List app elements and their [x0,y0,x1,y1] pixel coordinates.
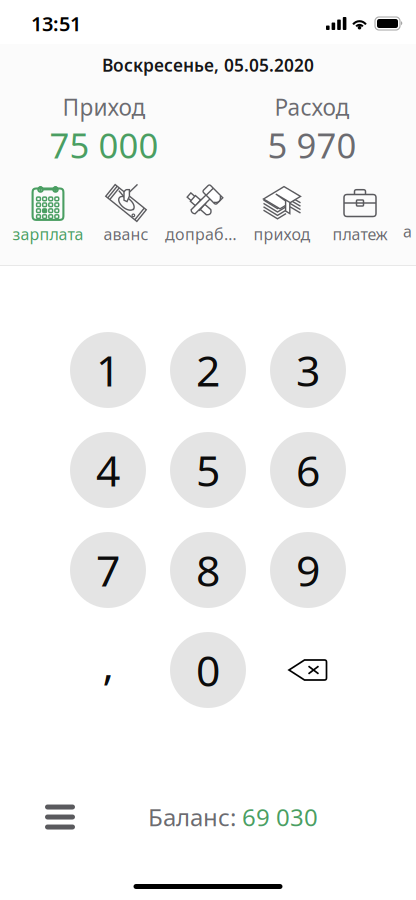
staticText: Воскресенье, 05.05.2020 [102,53,314,76]
button[interactable]: аванс [87,180,165,242]
button[interactable]: платеж [321,180,399,242]
staticText: платеж [332,223,387,245]
staticText: 69 030 [242,801,318,833]
button[interactable]: приход [243,180,321,242]
staticText: Баланс: [148,801,236,833]
button[interactable]: 7 [58,520,158,620]
button[interactable]: 0 [158,620,258,720]
button[interactable]: Menu [30,795,90,839]
staticText: Приход [62,92,145,122]
staticText: 0 [196,642,220,698]
button[interactable]: 4 [58,420,158,520]
staticText: аванс [103,223,148,245]
staticText: 2 [196,342,220,398]
button[interactable]: Decimal separator [58,620,158,720]
staticText: , [102,636,113,692]
staticText: 3 [296,342,320,398]
button[interactable]: 8 [158,520,258,620]
staticText: 4 [96,442,120,498]
staticText: зарплата [12,223,83,245]
staticText: а [403,221,412,242]
staticText: 8 [196,542,220,598]
staticText: 7 [96,542,120,598]
staticText: 75 000 [49,122,158,168]
button[interactable]: Backspace [258,620,358,720]
staticText: приход [253,223,310,245]
staticText: Расход [274,92,349,122]
button[interactable]: 3 [258,320,358,420]
staticText: 9 [296,542,320,598]
button[interactable]: 5 [158,420,258,520]
staticText: 6 [296,442,320,498]
button[interactable]: 6 [258,420,358,520]
staticText: допрабо... [165,223,243,245]
button[interactable]: 9 [258,520,358,620]
button[interactable]: 1 [58,320,158,420]
button[interactable]: допрабо... [165,180,243,242]
button[interactable]: 2 [158,320,258,420]
staticText: 1 [96,342,120,398]
staticText: 13:51 [31,10,81,37]
staticText: 5 970 [267,122,356,168]
staticText: 5 [196,442,220,498]
button[interactable]: зарплата [9,180,87,242]
